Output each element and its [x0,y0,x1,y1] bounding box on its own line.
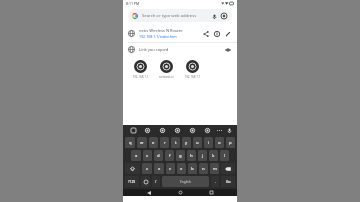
button[interactable]: t [171,137,180,148]
staticText: i [208,140,210,146]
staticText: o [218,140,221,146]
button[interactable]: Share [201,29,210,38]
button[interactable]: j [198,150,207,161]
button[interactable]: b [188,163,197,174]
staticText: b [191,166,194,172]
button[interactable]: Toolbar 3 [170,125,185,136]
button[interactable]: Shift [125,163,140,174]
button[interactable]: Show link [223,45,232,54]
staticText: Go [226,179,231,184]
staticText: Search or type web address [142,13,197,19]
button[interactable]: o [215,137,224,148]
staticText: Link you copied [139,47,169,52]
button[interactable]: r [160,137,169,148]
button[interactable]: m [210,163,219,174]
button[interactable]: / [152,176,160,187]
button[interactable]: Emoji [141,176,150,187]
staticText: ?123 [128,179,136,184]
button[interactable]: Go [221,176,235,187]
staticText: netis Wireless N Router [139,28,183,33]
button[interactable]: s [143,150,152,161]
staticText: n [202,166,205,172]
staticText: k [212,153,215,159]
staticText: 192.168.1.1 [184,75,201,79]
button[interactable]: Search or type web address [128,9,232,22]
button[interactable]: q [125,137,135,148]
button[interactable]: Recents [206,189,216,196]
staticText: j [202,153,204,159]
staticText: English [180,180,191,184]
button[interactable]: w [137,137,147,148]
button[interactable]: p [226,137,235,148]
staticText: l [224,153,226,159]
staticText: s [146,153,149,159]
staticText: w [140,140,144,146]
button[interactable]: Voice input [224,125,234,136]
staticText: x [158,166,161,172]
staticText: t [175,140,177,146]
staticText: f [169,153,171,159]
button[interactable]: v [177,163,186,174]
button[interactable]: Toolbar 5 [200,125,215,136]
button[interactable]: netisext.cc [153,59,179,80]
button[interactable]: h [187,150,196,161]
button[interactable]: 192.168.1.1 [127,59,153,80]
staticText: 8:11 PM [126,1,140,6]
button[interactable]: Home [175,189,185,196]
button[interactable]: Toolbar 0 [126,125,140,136]
button[interactable]: e [149,137,158,148]
button[interactable]: n [199,163,208,174]
button[interactable]: Toolbar 1 [140,125,155,136]
staticText: e [152,140,155,146]
staticText: v [180,166,183,172]
button[interactable]: k [209,150,218,161]
staticText: q [129,140,132,146]
button[interactable]: Voice search [210,12,218,20]
staticText: c [169,166,172,172]
button[interactable]: Toolbar 2 [155,125,170,136]
button[interactable]: Backspace [221,163,235,174]
staticText: . [215,179,216,184]
staticText: / [155,179,157,184]
staticText: p [229,140,232,146]
button[interactable]: Edit [223,29,232,38]
staticText: m [213,166,217,172]
staticText: g [179,153,182,159]
button[interactable]: g [176,150,185,161]
button[interactable]: Lens search [220,12,228,20]
button[interactable]: Toolbar 4 [185,125,200,136]
button[interactable]: . [211,176,219,187]
button[interactable]: netis Wireless N Router [123,25,237,42]
button[interactable]: c [166,163,175,174]
staticText: z [146,166,148,172]
button[interactable]: u [193,137,202,148]
staticText: d [157,153,160,159]
button[interactable]: ?123 [125,176,139,187]
button[interactable]: x [154,163,164,174]
staticText: netisext.cc [159,75,174,79]
staticText: r [164,140,166,146]
staticText: a [135,153,138,159]
staticText: h [190,153,193,159]
staticText: 192.168.1.1/index.htm [139,34,177,39]
button[interactable]: l [220,150,229,161]
staticText: 192.168.1.1 [132,75,149,79]
button[interactable]: Page info [212,29,221,38]
button[interactable]: d [154,150,163,161]
staticText: u [196,140,199,146]
button[interactable]: z [142,163,152,174]
button[interactable]: i [204,137,213,148]
button[interactable]: Space [162,176,209,187]
button[interactable]: y [182,137,191,148]
button[interactable]: f [165,150,174,161]
button[interactable]: a [131,150,141,161]
staticText: y [185,140,188,146]
button[interactable]: Link you copied [123,43,237,56]
button[interactable]: 192.168.1.1 [179,59,205,80]
button[interactable]: More [215,125,224,136]
button[interactable]: Back [144,189,154,196]
